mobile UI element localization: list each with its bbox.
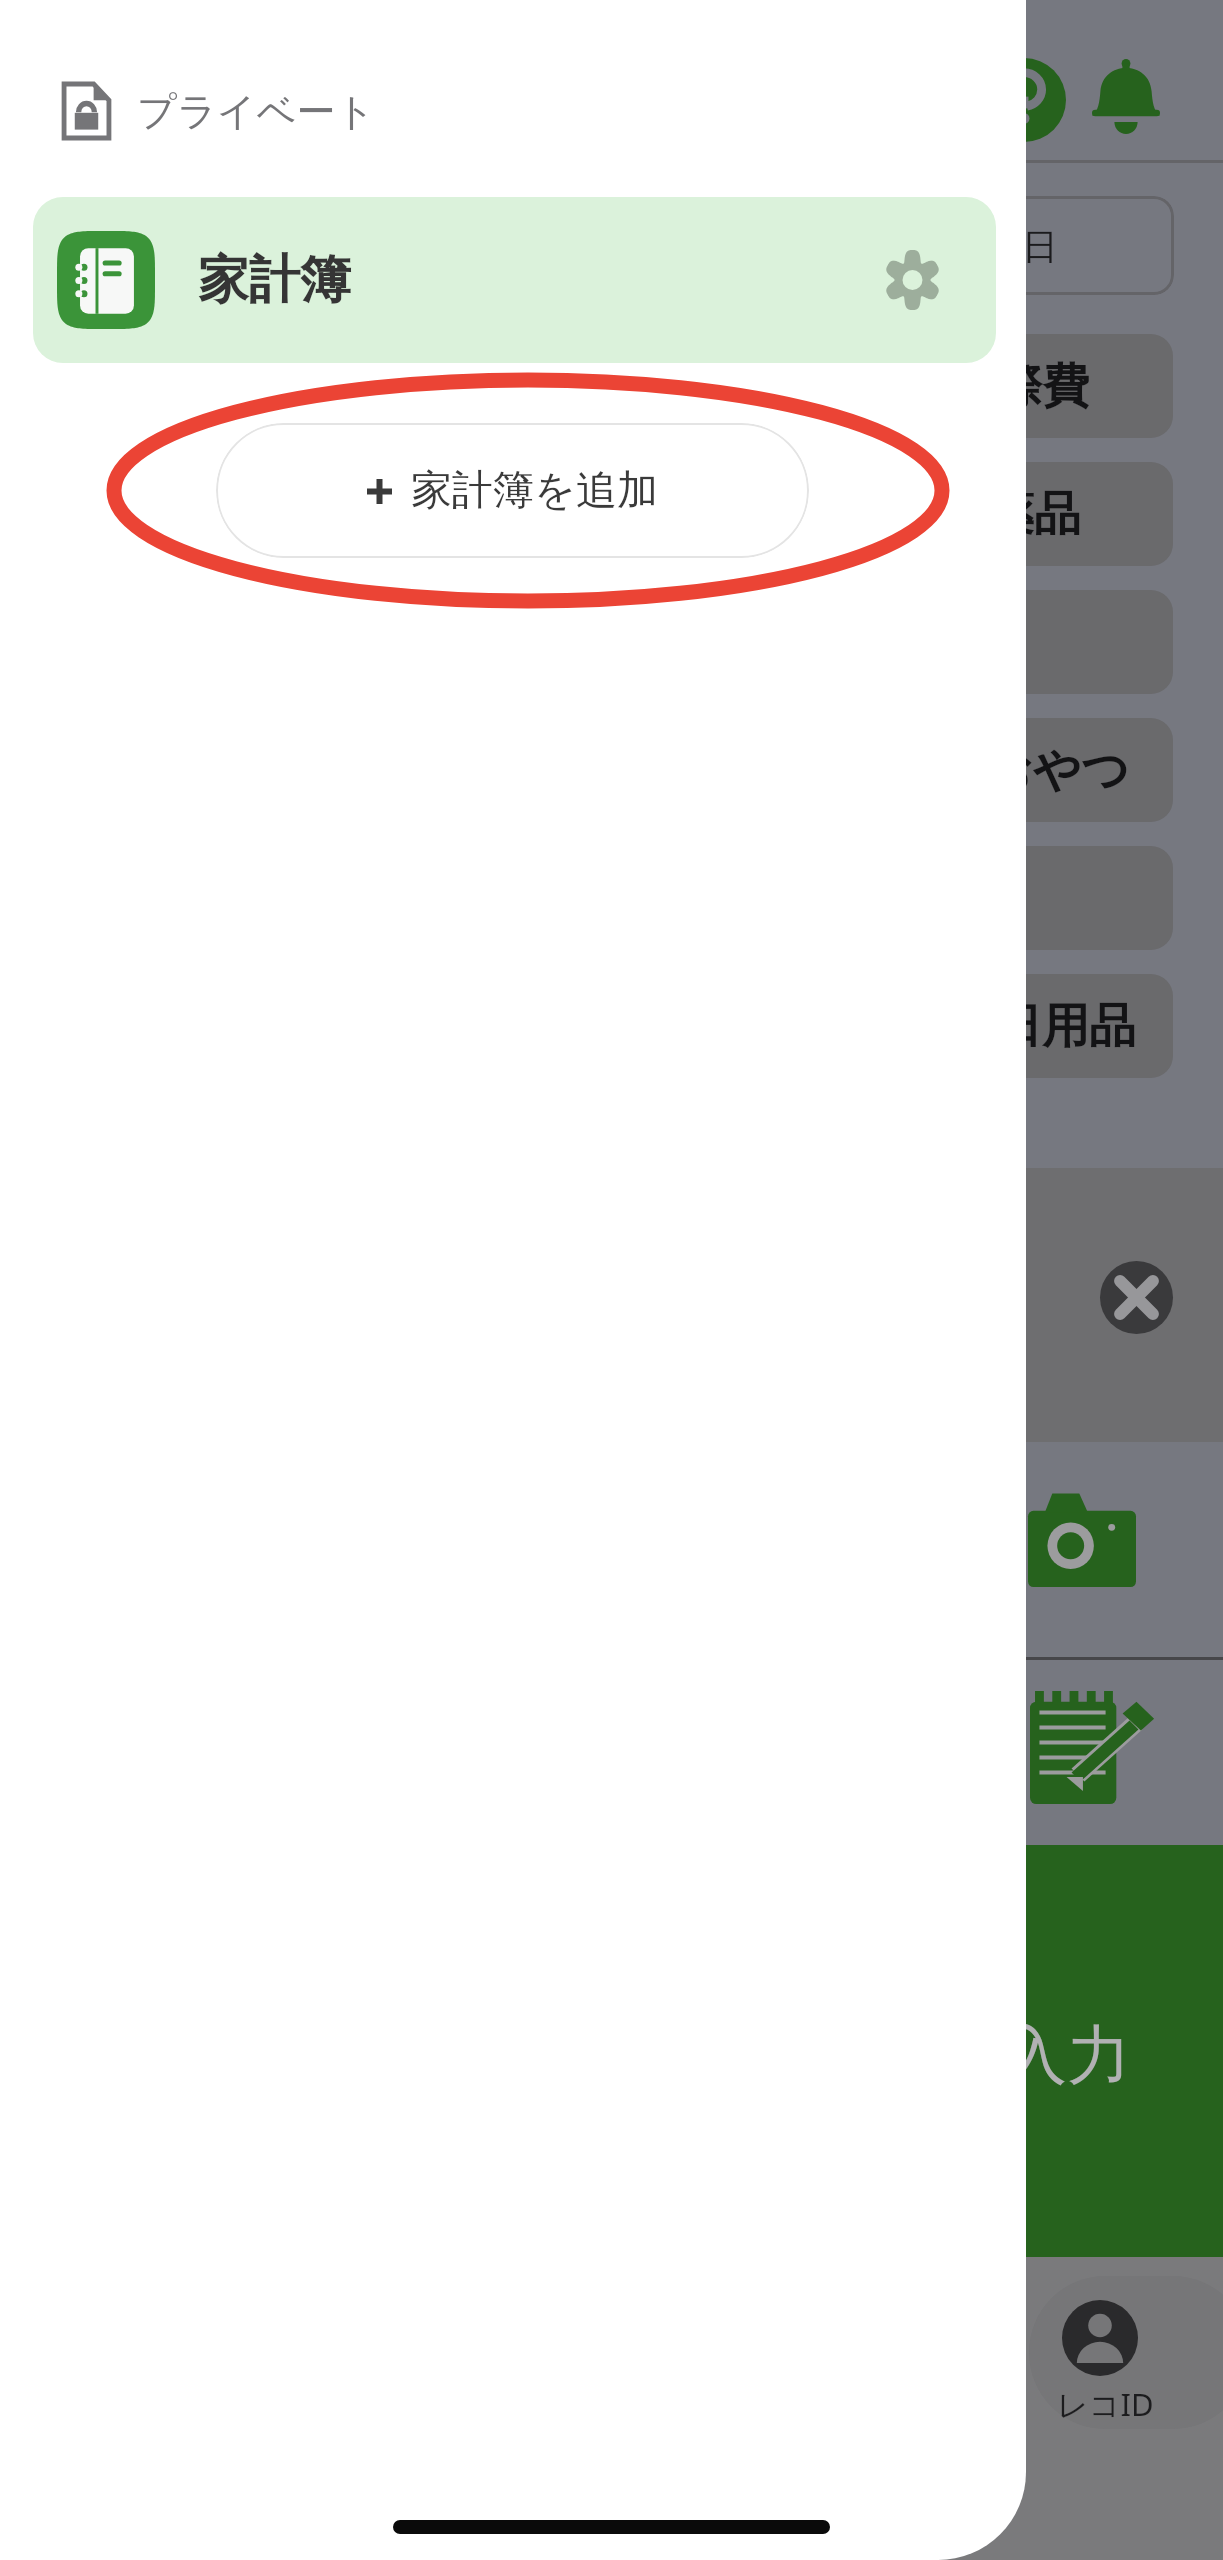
button[interactable] xyxy=(640,846,1173,950)
button[interactable]: Manual entry xyxy=(1030,1691,1156,1804)
button[interactable]: おやつ xyxy=(640,718,1173,822)
button[interactable]: 入力 xyxy=(0,1845,1223,2257)
button[interactable]: 日用品 xyxy=(640,974,1173,1078)
staticText: 医薬品 xyxy=(940,485,1081,544)
staticText: プライベート xyxy=(137,87,376,136)
staticText: レコID xyxy=(1057,2383,1154,2425)
button[interactable]: 家計簿を追加 xyxy=(216,423,809,558)
button[interactable]: Notifications xyxy=(1086,56,1166,144)
button[interactable] xyxy=(640,590,1173,694)
button[interactable]: 医薬品 xyxy=(640,462,1173,566)
staticText: 日用品 xyxy=(995,997,1136,1056)
button[interactable]: Camera xyxy=(1028,1490,1136,1587)
staticText: 2024年4月23日 xyxy=(806,221,1059,270)
button[interactable]: 家計簿 xyxy=(33,197,996,363)
button[interactable]: Help xyxy=(982,58,1066,142)
button[interactable]: レコID xyxy=(1000,2267,1223,2447)
staticText: 交際費 xyxy=(948,357,1089,416)
staticText: 家計簿 xyxy=(198,248,351,312)
button[interactable]: Settings xyxy=(870,238,954,322)
staticText: 入力 xyxy=(1003,2015,1131,2096)
button[interactable]: Clear xyxy=(1100,1261,1173,1334)
button[interactable]: 2024年4月23日 xyxy=(700,196,1174,295)
button[interactable]: 交際費 xyxy=(640,334,1173,438)
staticText: おやつ xyxy=(985,741,1130,800)
staticText: 家計簿を追加 xyxy=(411,465,658,517)
